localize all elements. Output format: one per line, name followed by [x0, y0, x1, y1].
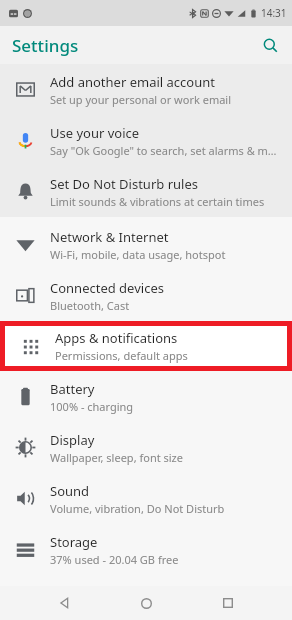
staticText: 37% used - 20.04 GB free	[50, 552, 179, 567]
staticText: Settings	[12, 34, 79, 57]
staticText: Set up your personal or work email	[50, 92, 232, 107]
staticText: Wallpaper, sleep, font size	[50, 450, 183, 465]
button[interactable]: Connected devices	[0, 270, 292, 321]
button[interactable]: Display	[0, 422, 292, 473]
staticText: Permissions, default apps	[55, 348, 188, 363]
staticText: Volume, vibration, Do Not Disturb	[50, 501, 225, 516]
staticText: Battery	[50, 380, 95, 398]
button[interactable]: Recent apps	[211, 586, 245, 620]
button[interactable]: Add another email account	[0, 64, 292, 115]
staticText: Limit sounds & vibrations at certain tim…	[50, 194, 265, 209]
button[interactable]: Battery	[0, 371, 292, 422]
staticText: 14:31	[261, 6, 287, 20]
staticText: Connected devices	[50, 279, 164, 297]
staticText: Apps & notifications	[55, 329, 178, 347]
staticText: Bluetooth, Cast	[50, 298, 130, 313]
staticText: Use your voice	[50, 124, 140, 142]
staticText: Display	[50, 431, 95, 449]
button[interactable]: Search settings	[257, 32, 283, 58]
staticText: Sound	[50, 482, 90, 500]
button[interactable]: Back	[48, 586, 82, 620]
button[interactable]: Home	[129, 586, 163, 620]
staticText: Network & Internet	[50, 228, 169, 246]
staticText: Add another email account	[50, 73, 215, 91]
staticText: 100% - charging	[50, 399, 134, 414]
button[interactable]: Set Do Not Disturb rules	[0, 166, 292, 217]
staticText: Say "Ok Google" to search, set alarms & …	[50, 143, 282, 158]
staticText: Wi-Fi, mobile, data usage, hotspot	[50, 247, 226, 262]
staticText: Storage	[50, 533, 98, 551]
button[interactable]: Apps & notifications	[5, 326, 287, 366]
button[interactable]: Sound	[0, 473, 292, 524]
staticText: Set Do Not Disturb rules	[50, 175, 198, 193]
button[interactable]: Use your voice	[0, 115, 292, 166]
button[interactable]: Network & Internet	[0, 219, 292, 270]
button[interactable]: Storage	[0, 524, 292, 575]
